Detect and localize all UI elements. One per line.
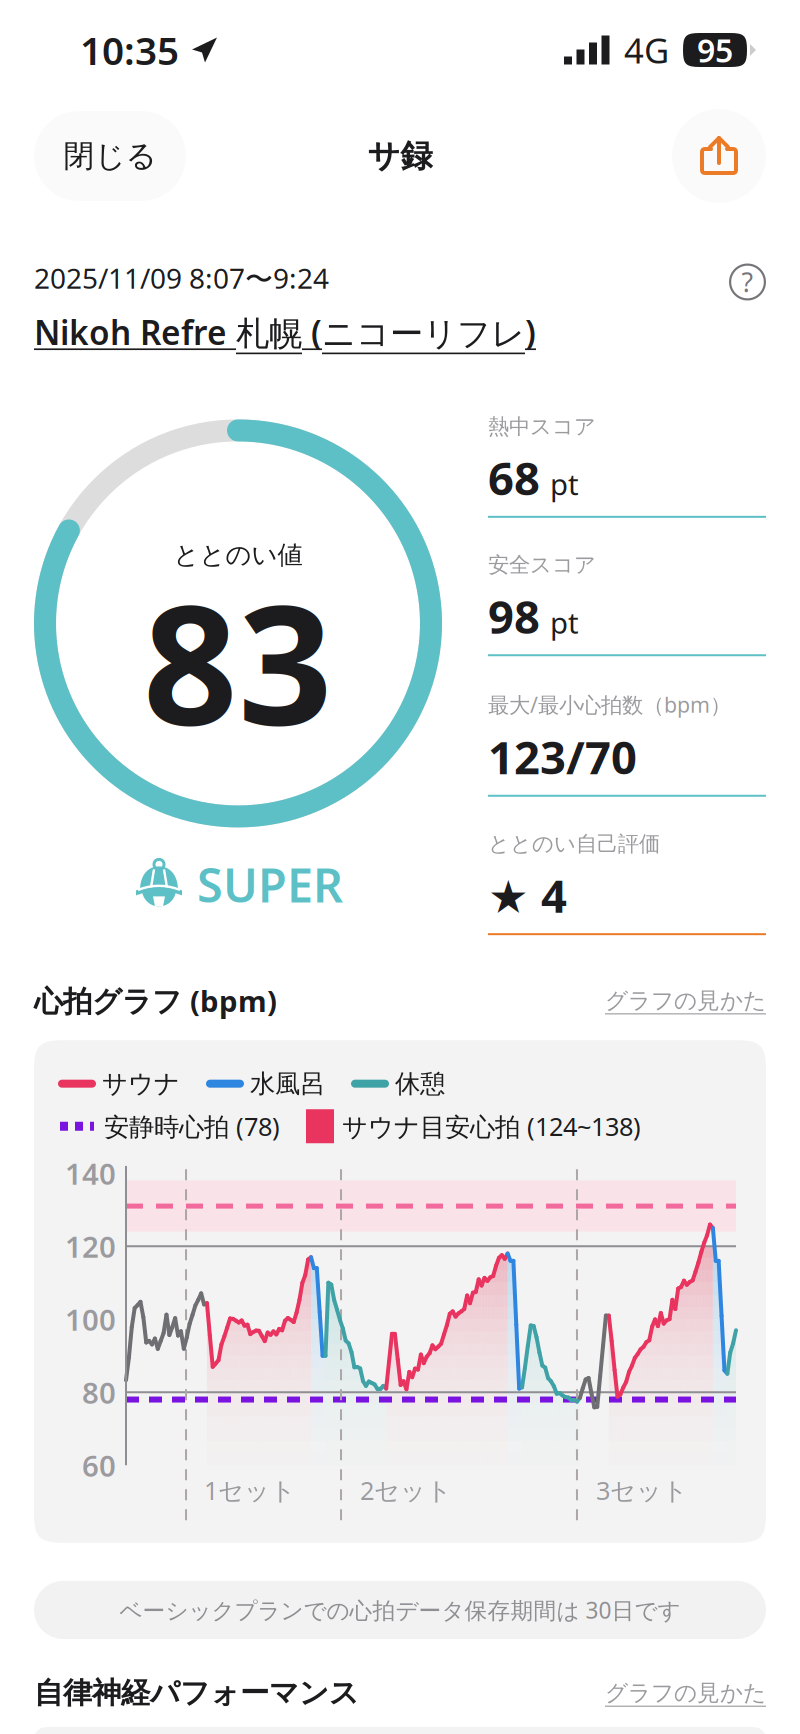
staticText: 熱中スコア	[488, 413, 596, 440]
button[interactable]: Help	[729, 259, 766, 296]
staticText: SUPER	[197, 853, 343, 915]
staticText: 自律神経パフォーマンス	[34, 1675, 359, 1711]
staticText: グラフの見かた	[605, 987, 766, 1014]
staticText: 100	[65, 1300, 116, 1339]
staticText: ベーシックプランでの心拍データ保存期間は 30日です	[119, 1595, 680, 1625]
staticText: 最大/最小心拍数（bpm）	[488, 690, 731, 718]
button[interactable]: グラフの見かた	[605, 1679, 766, 1707]
staticText: pt	[550, 464, 579, 503]
button[interactable]: 閉じる	[34, 111, 186, 201]
staticText: 4G	[624, 27, 669, 73]
staticText: ★ 4	[488, 865, 567, 925]
staticText: 安全スコア	[488, 552, 596, 578]
staticText: 心拍グラフ (bpm)	[34, 981, 277, 1020]
staticText: 閉じる	[63, 137, 156, 175]
staticText: 2セット	[360, 1473, 452, 1507]
staticText: 68	[488, 448, 540, 508]
staticText: 95	[697, 29, 733, 71]
staticText: 80	[82, 1373, 116, 1412]
staticText: 60	[82, 1446, 116, 1485]
staticText: 120	[65, 1227, 116, 1266]
staticText: ととのい値	[173, 539, 302, 570]
staticText: 140	[65, 1154, 116, 1193]
staticText: 10:35	[80, 24, 179, 76]
staticText: ととのい自己評価	[488, 831, 660, 857]
staticText: サ録	[367, 136, 432, 176]
staticText: 83	[143, 551, 333, 770]
staticText: 1セット	[204, 1473, 296, 1507]
staticText: 98	[488, 586, 540, 646]
staticText: 安静時心拍 (78)	[104, 1109, 280, 1143]
staticText: 休憩	[395, 1068, 445, 1099]
staticText: グラフの見かた	[605, 1679, 766, 1707]
staticText: Nikoh Refre 札幌 (ニコーリフレ)	[34, 310, 536, 354]
button[interactable]: グラフの見かた	[605, 987, 766, 1014]
staticText: 3セット	[596, 1473, 688, 1507]
staticText: 2025/11/09 8:07〜9:24	[34, 259, 329, 297]
button[interactable]: Share	[672, 109, 766, 203]
staticText: 123/70	[488, 727, 637, 787]
staticText: サウナ	[102, 1068, 180, 1099]
staticText: pt	[550, 603, 579, 642]
staticText: サウナ目安心拍 (124~138)	[342, 1109, 641, 1143]
staticText: 水風呂	[250, 1068, 325, 1099]
staticText: ?	[741, 264, 753, 300]
